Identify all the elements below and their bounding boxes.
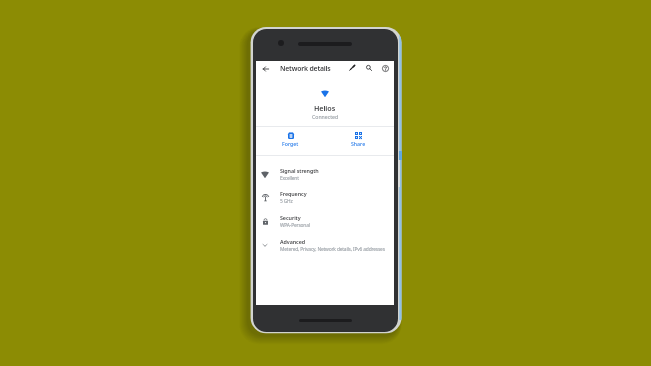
staticText: Connected — [312, 113, 339, 120]
staticText: Helios — [314, 103, 336, 113]
button[interactable]: Edit — [345, 61, 359, 75]
button[interactable]: Signal strength — [256, 162, 394, 186]
staticText: Excellent — [280, 175, 299, 182]
staticText: Security — [280, 214, 301, 221]
button[interactable]: Security — [256, 209, 394, 233]
button[interactable]: Search — [362, 61, 376, 75]
staticText: Forget — [282, 140, 299, 147]
staticText: Signal strength — [280, 167, 319, 174]
staticText: Frequency — [280, 190, 307, 197]
button[interactable]: Frequency — [256, 185, 394, 209]
staticText: Metered, Privacy, Network details, IPv6 … — [280, 246, 385, 253]
staticText: WPA-Personal — [280, 222, 310, 229]
staticText: Network details — [280, 64, 331, 73]
button[interactable]: Share — [334, 127, 382, 155]
button[interactable]: Advanced — [256, 233, 394, 257]
staticText: Advanced — [280, 238, 305, 245]
button[interactable]: Forget — [266, 127, 314, 155]
staticText: 5 GHz — [280, 198, 293, 205]
button[interactable]: Back — [259, 62, 273, 76]
button[interactable]: Help — [378, 61, 392, 75]
staticText: Share — [351, 140, 366, 147]
